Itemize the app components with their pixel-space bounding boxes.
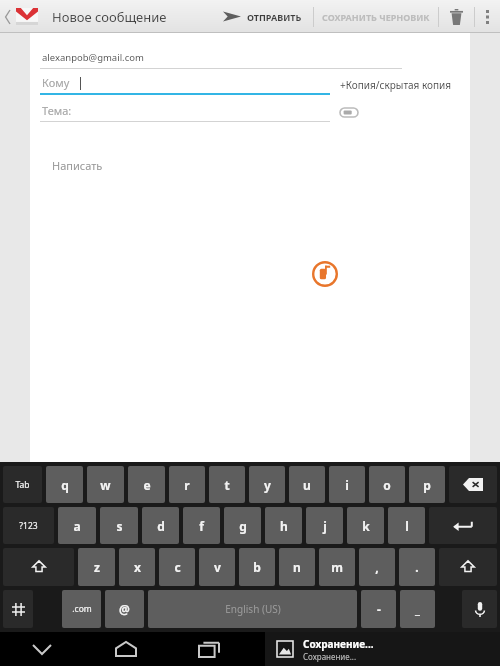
staticText: g: [239, 518, 247, 534]
staticText: x: [134, 559, 141, 575]
button[interactable]: s: [100, 507, 138, 544]
staticText: Сохранение...: [303, 637, 374, 651]
staticText: .com: [72, 603, 92, 615]
button[interactable]: +Копия/скрытая копия: [340, 78, 470, 92]
button[interactable]: Кому: [30, 75, 330, 95]
staticText: p: [423, 477, 431, 493]
button[interactable]: e: [128, 466, 165, 503]
button[interactable]: Тема:: [30, 103, 330, 122]
staticText: Кому: [42, 75, 70, 90]
button[interactable]: z: [78, 548, 115, 586]
button[interactable]: m: [319, 548, 355, 586]
button[interactable]: t: [209, 466, 245, 503]
staticText: k: [362, 518, 370, 534]
staticText: ,: [375, 559, 379, 575]
button[interactable]: alexanpob@gmail.com: [30, 51, 402, 69]
button[interactable]: @: [105, 590, 144, 628]
button[interactable]: Backspace: [449, 466, 497, 503]
button[interactable]: w: [87, 466, 124, 503]
staticText: h: [280, 518, 288, 534]
button[interactable]: Написать: [30, 158, 470, 173]
button[interactable]: j: [306, 507, 343, 544]
staticText: ?123: [19, 520, 38, 532]
button[interactable]: Shift: [439, 548, 497, 586]
staticText: English (US): [225, 602, 281, 616]
button[interactable]: ОТПРАВИТЬ: [217, 0, 308, 33]
staticText: j: [323, 518, 327, 534]
button[interactable]: .com: [62, 590, 101, 628]
staticText: e: [143, 477, 151, 493]
button[interactable]: o: [369, 466, 405, 503]
staticText: Tab: [15, 479, 30, 491]
button[interactable]: h: [265, 507, 302, 544]
button[interactable]: СОХРАНИТЬ ЧЕРНОВИК: [314, 0, 438, 33]
button[interactable]: Shift: [3, 548, 74, 586]
staticText: l: [405, 518, 409, 534]
staticText: r: [184, 477, 190, 493]
staticText: Тема:: [42, 103, 72, 118]
button[interactable]: Сохранение...: [265, 632, 500, 666]
button[interactable]: q: [46, 466, 83, 503]
staticText: z: [94, 559, 100, 575]
button[interactable]: v: [199, 548, 235, 586]
button[interactable]: r: [169, 466, 205, 503]
staticText: alexanpob@gmail.com: [42, 51, 144, 64]
staticText: +Копия/скрытая копия: [340, 78, 452, 92]
button[interactable]: ,: [359, 548, 395, 586]
button[interactable]: _: [400, 590, 435, 628]
button[interactable]: y: [249, 466, 285, 503]
button[interactable]: n: [279, 548, 315, 586]
button[interactable]: Attach file: [340, 108, 470, 117]
staticText: _: [415, 601, 420, 617]
staticText: @: [119, 601, 130, 617]
staticText: o: [383, 477, 391, 493]
button[interactable]: Up: [0, 0, 44, 33]
staticText: a: [73, 518, 81, 534]
staticText: w: [100, 477, 111, 493]
button[interactable]: d: [142, 507, 179, 544]
staticText: i: [345, 477, 349, 493]
button[interactable]: Enter: [429, 507, 497, 544]
staticText: -: [377, 601, 381, 617]
button[interactable]: a: [58, 507, 96, 544]
staticText: d: [157, 518, 165, 534]
button[interactable]: i: [329, 466, 365, 503]
button[interactable]: Delete: [439, 0, 474, 33]
staticText: b: [253, 559, 261, 575]
staticText: c: [174, 559, 181, 575]
button[interactable]: g: [224, 507, 261, 544]
staticText: u: [303, 477, 311, 493]
button[interactable]: Recent apps: [167, 632, 250, 666]
staticText: v: [214, 559, 221, 575]
button[interactable]: u: [289, 466, 325, 503]
button[interactable]: Voice input: [462, 590, 497, 628]
button[interactable]: b: [239, 548, 275, 586]
button[interactable]: More options: [475, 0, 500, 33]
button[interactable]: English (US): [148, 590, 357, 628]
button[interactable]: l: [388, 507, 425, 544]
staticText: ОТПРАВИТЬ: [247, 11, 302, 23]
staticText: y: [264, 477, 271, 493]
button[interactable]: Input settings: [3, 590, 33, 628]
button[interactable]: f: [183, 507, 220, 544]
button[interactable]: ?123: [3, 507, 54, 544]
button[interactable]: Back: [0, 632, 84, 666]
staticText: q: [61, 477, 69, 493]
staticText: n: [293, 559, 301, 575]
button[interactable]: Tab: [3, 466, 42, 503]
staticText: .: [415, 559, 419, 575]
staticText: СОХРАНИТЬ ЧЕРНОВИК: [322, 11, 430, 23]
button[interactable]: Home: [84, 632, 167, 666]
staticText: Сохранение...: [303, 651, 357, 662]
button[interactable]: -: [361, 590, 396, 628]
button[interactable]: x: [119, 548, 155, 586]
button[interactable]: p: [409, 466, 445, 503]
button[interactable]: k: [347, 507, 384, 544]
button[interactable]: c: [159, 548, 195, 586]
staticText: t: [224, 477, 230, 493]
staticText: m: [331, 559, 343, 575]
staticText: Новое сообщение: [52, 8, 167, 26]
button[interactable]: .: [399, 548, 435, 586]
staticText: Написать: [52, 158, 103, 173]
staticText: f: [199, 518, 204, 534]
